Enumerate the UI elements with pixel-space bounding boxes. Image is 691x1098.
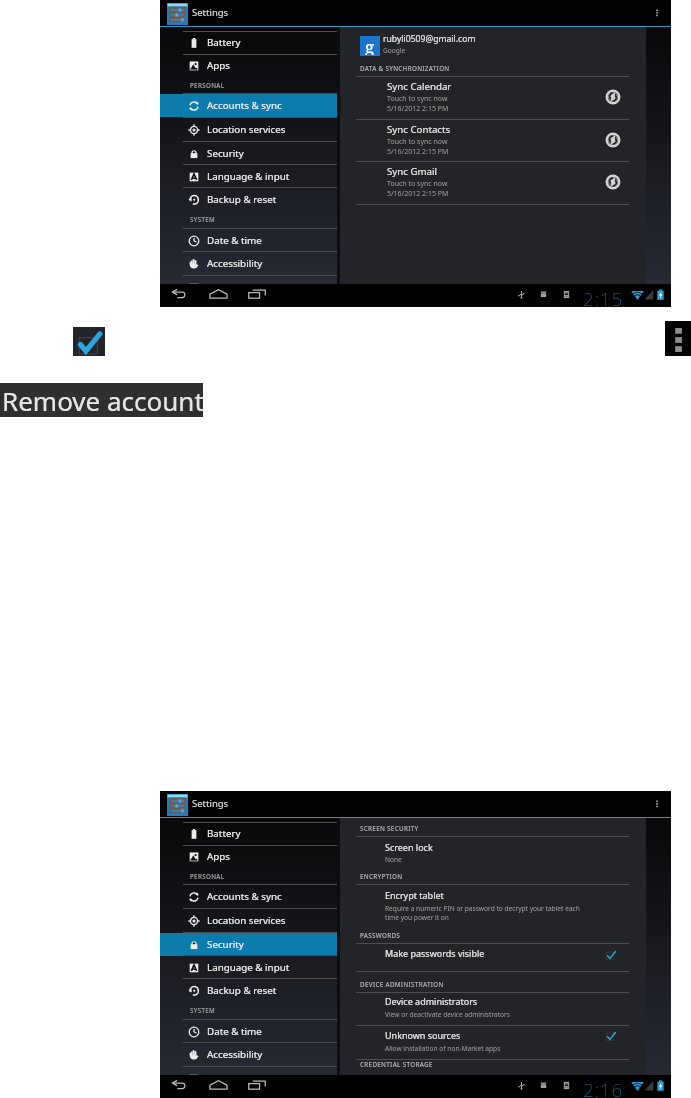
button[interactable] — [340, 992, 646, 1025]
button[interactable]: Backup & reset — [160, 188, 337, 211]
staticText: Settings — [192, 797, 229, 810]
staticText: Encrypt tablet — [385, 889, 444, 901]
staticText: View or deactivate device administrators — [385, 1010, 510, 1019]
staticText: None — [385, 855, 402, 864]
button[interactable] — [340, 1026, 646, 1058]
button[interactable]: More options — [649, 796, 665, 812]
staticText: g — [365, 35, 375, 55]
button[interactable]: More options — [665, 321, 691, 356]
staticText: Google — [383, 46, 406, 55]
staticText: 5/16/2012 2:15 PM — [387, 104, 449, 114]
staticText: rubyli0509@gmail.com — [383, 33, 476, 45]
staticText: Require a numeric PIN or password to dec… — [385, 904, 580, 913]
staticText: 2:16 — [583, 1077, 624, 1098]
staticText: Date & time — [207, 234, 262, 247]
staticText: Language & input — [207, 170, 290, 183]
staticText: ENCRYPTION — [360, 872, 403, 881]
staticText: PERSONAL — [190, 81, 225, 89]
staticText: Apps — [207, 59, 231, 72]
staticText: SYSTEM — [190, 215, 216, 223]
staticText: 2:15 — [583, 286, 624, 312]
staticText: time you power it on — [385, 913, 449, 922]
staticText: Sync Gmail — [387, 165, 437, 178]
button[interactable]: Security — [160, 933, 337, 956]
staticText: Touch to sync now — [387, 179, 448, 189]
button[interactable]: Sync Contacts — [340, 119, 646, 161]
staticText: SYSTEM — [190, 1006, 216, 1014]
button[interactable]: Developer options — [160, 1067, 337, 1090]
staticText: Developer options — [207, 1072, 292, 1085]
staticText: Make passwords visible — [385, 947, 485, 959]
button[interactable]: Battery — [160, 31, 337, 54]
staticText: Settings — [192, 6, 229, 19]
button[interactable]: Accessibility — [160, 1043, 337, 1066]
button[interactable]: Home — [209, 1080, 228, 1090]
button[interactable]: Recent apps — [248, 1080, 266, 1090]
staticText: CREDENTIAL STORAGE — [360, 1060, 433, 1069]
staticText: Touch to sync now — [387, 137, 448, 147]
button[interactable]: Apps — [160, 845, 337, 868]
staticText: Date & time — [207, 1025, 262, 1038]
button[interactable]: More options — [649, 5, 665, 21]
button[interactable]: Developer options — [160, 276, 337, 299]
button[interactable] — [340, 943, 646, 971]
staticText: Security — [207, 147, 244, 160]
staticText: DEVICE ADMINISTRATION — [360, 980, 444, 989]
button[interactable]: Accounts & sync — [160, 885, 337, 908]
staticText: Battery — [207, 827, 241, 840]
button[interactable]: Recent apps — [248, 289, 266, 299]
staticText: Apps — [207, 850, 231, 863]
staticText: Security — [207, 938, 244, 951]
staticText: Battery — [207, 36, 241, 49]
staticText: DATA & SYNCHRONIZATION — [360, 64, 450, 73]
staticText: Developer options — [207, 281, 292, 294]
staticText: Language & input — [207, 961, 290, 974]
staticText: Accessibility — [207, 257, 263, 270]
staticText: Allow installation of non-Market apps — [385, 1044, 501, 1053]
button[interactable]: Backup & reset — [160, 979, 337, 1002]
button[interactable]: Apps — [160, 54, 337, 77]
button[interactable]: Remove account — [0, 383, 203, 417]
staticText: Location services — [207, 123, 286, 136]
staticText: Accessibility — [207, 1048, 263, 1061]
button[interactable]: Accounts & sync — [160, 94, 337, 117]
button[interactable]: Language & input — [160, 165, 337, 188]
button[interactable]: Security — [160, 142, 337, 165]
staticText: Screen lock — [385, 841, 433, 853]
button[interactable]: Back — [171, 1080, 187, 1090]
button[interactable]: Sync Gmail — [340, 161, 646, 203]
button[interactable]: Date & time — [160, 229, 337, 252]
button[interactable]: Language & input — [160, 956, 337, 979]
button[interactable]: Back — [171, 289, 187, 299]
button[interactable]: Location services — [160, 909, 337, 932]
button[interactable]: Battery — [160, 822, 337, 845]
staticText: PASSWORDS — [360, 931, 401, 940]
staticText: SCREEN SECURITY — [360, 824, 419, 833]
staticText: Accounts & sync — [207, 99, 282, 112]
button[interactable]: Sync Calendar — [340, 76, 646, 118]
staticText: Backup & reset — [207, 984, 277, 997]
staticText: Device administrators — [385, 995, 478, 1007]
staticText: Sync Calendar — [387, 80, 452, 93]
staticText: Backup & reset — [207, 193, 277, 206]
staticText: Unknown sources — [385, 1029, 461, 1041]
staticText: Touch to sync now — [387, 94, 448, 104]
button[interactable] — [340, 836, 646, 859]
button[interactable]: Location services — [160, 118, 337, 141]
staticText: 5/16/2012 2:15 PM — [387, 189, 449, 199]
staticText: Accounts & sync — [207, 890, 282, 903]
staticText: Location services — [207, 914, 286, 927]
button[interactable]: Home — [209, 289, 228, 299]
staticText: 5/16/2012 2:15 PM — [387, 147, 449, 157]
staticText: Sync Contacts — [387, 123, 451, 136]
button[interactable]: Date & time — [160, 1020, 337, 1043]
button[interactable] — [340, 885, 646, 917]
button[interactable]: Accessibility — [160, 252, 337, 275]
staticText: Remove account — [2, 383, 204, 417]
staticText: PERSONAL — [190, 872, 225, 880]
